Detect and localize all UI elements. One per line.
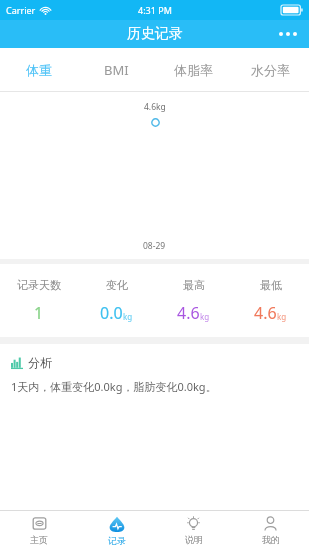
staticText: 4:31 PM: [138, 4, 172, 16]
staticText: 4.6: [254, 302, 277, 324]
other: Profile: [263, 516, 278, 531]
button[interactable]: More options: [271, 26, 305, 42]
other: Records: [109, 516, 125, 532]
button[interactable]: 最高: [155, 264, 232, 337]
staticText: BMI: [104, 61, 129, 79]
staticText: 历史记录: [127, 25, 183, 43]
button[interactable]: Profile: [232, 511, 309, 550]
staticText: 0.0: [100, 302, 123, 324]
button[interactable]: Instructions: [155, 511, 232, 550]
staticText: 1天内，体重变化0.0kg，脂肪变化0.0kg。: [11, 379, 217, 394]
staticText: 1: [34, 302, 44, 324]
button[interactable]: 体脂率: [155, 48, 232, 91]
staticText: kg: [123, 311, 133, 322]
staticText: 说明: [185, 534, 203, 545]
staticText: 变化: [106, 278, 128, 292]
staticText: 水分率: [251, 62, 290, 78]
button[interactable]: Home: [0, 511, 78, 550]
staticText: kg: [200, 311, 210, 322]
button[interactable]: 变化: [78, 264, 155, 337]
staticText: 主页: [30, 534, 48, 545]
staticText: Carrier: [6, 4, 36, 16]
staticText: 最低: [260, 278, 282, 292]
staticText: 分析: [28, 355, 52, 370]
staticText: 4.6kg: [144, 101, 166, 113]
button[interactable]: Records: [78, 511, 155, 550]
staticText: 08-29: [143, 240, 166, 252]
staticText: 最高: [183, 278, 205, 292]
staticText: kg: [277, 311, 287, 322]
staticText: 我的: [262, 534, 280, 545]
staticText: 记录天数: [17, 278, 61, 292]
button[interactable]: 最低: [232, 264, 309, 337]
other: Instructions: [186, 516, 201, 531]
other: Home: [32, 516, 47, 531]
staticText: 4.6: [177, 302, 200, 324]
staticText: 体重: [26, 62, 52, 78]
staticText: 体脂率: [174, 62, 213, 78]
button[interactable]: 记录天数: [0, 264, 78, 337]
button[interactable]: 体重: [0, 48, 78, 91]
staticText: 记录: [108, 535, 126, 546]
button[interactable]: 水分率: [232, 48, 309, 91]
button[interactable]: BMI: [78, 48, 155, 91]
